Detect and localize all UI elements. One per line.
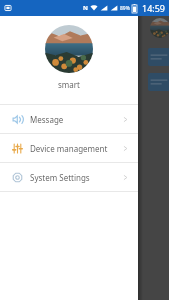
staticText: smart — [58, 79, 80, 90]
staticText: 89% — [120, 5, 130, 12]
staticText: Device management — [30, 143, 108, 154]
button[interactable]: Device management — [0, 134, 138, 162]
button[interactable]: Message — [0, 105, 138, 133]
staticText: System Settings — [30, 172, 90, 183]
staticText: N — [83, 4, 88, 12]
staticText: 14:59 — [142, 2, 166, 14]
button[interactable]: System Settings — [0, 163, 138, 191]
staticText: Message — [30, 114, 64, 125]
